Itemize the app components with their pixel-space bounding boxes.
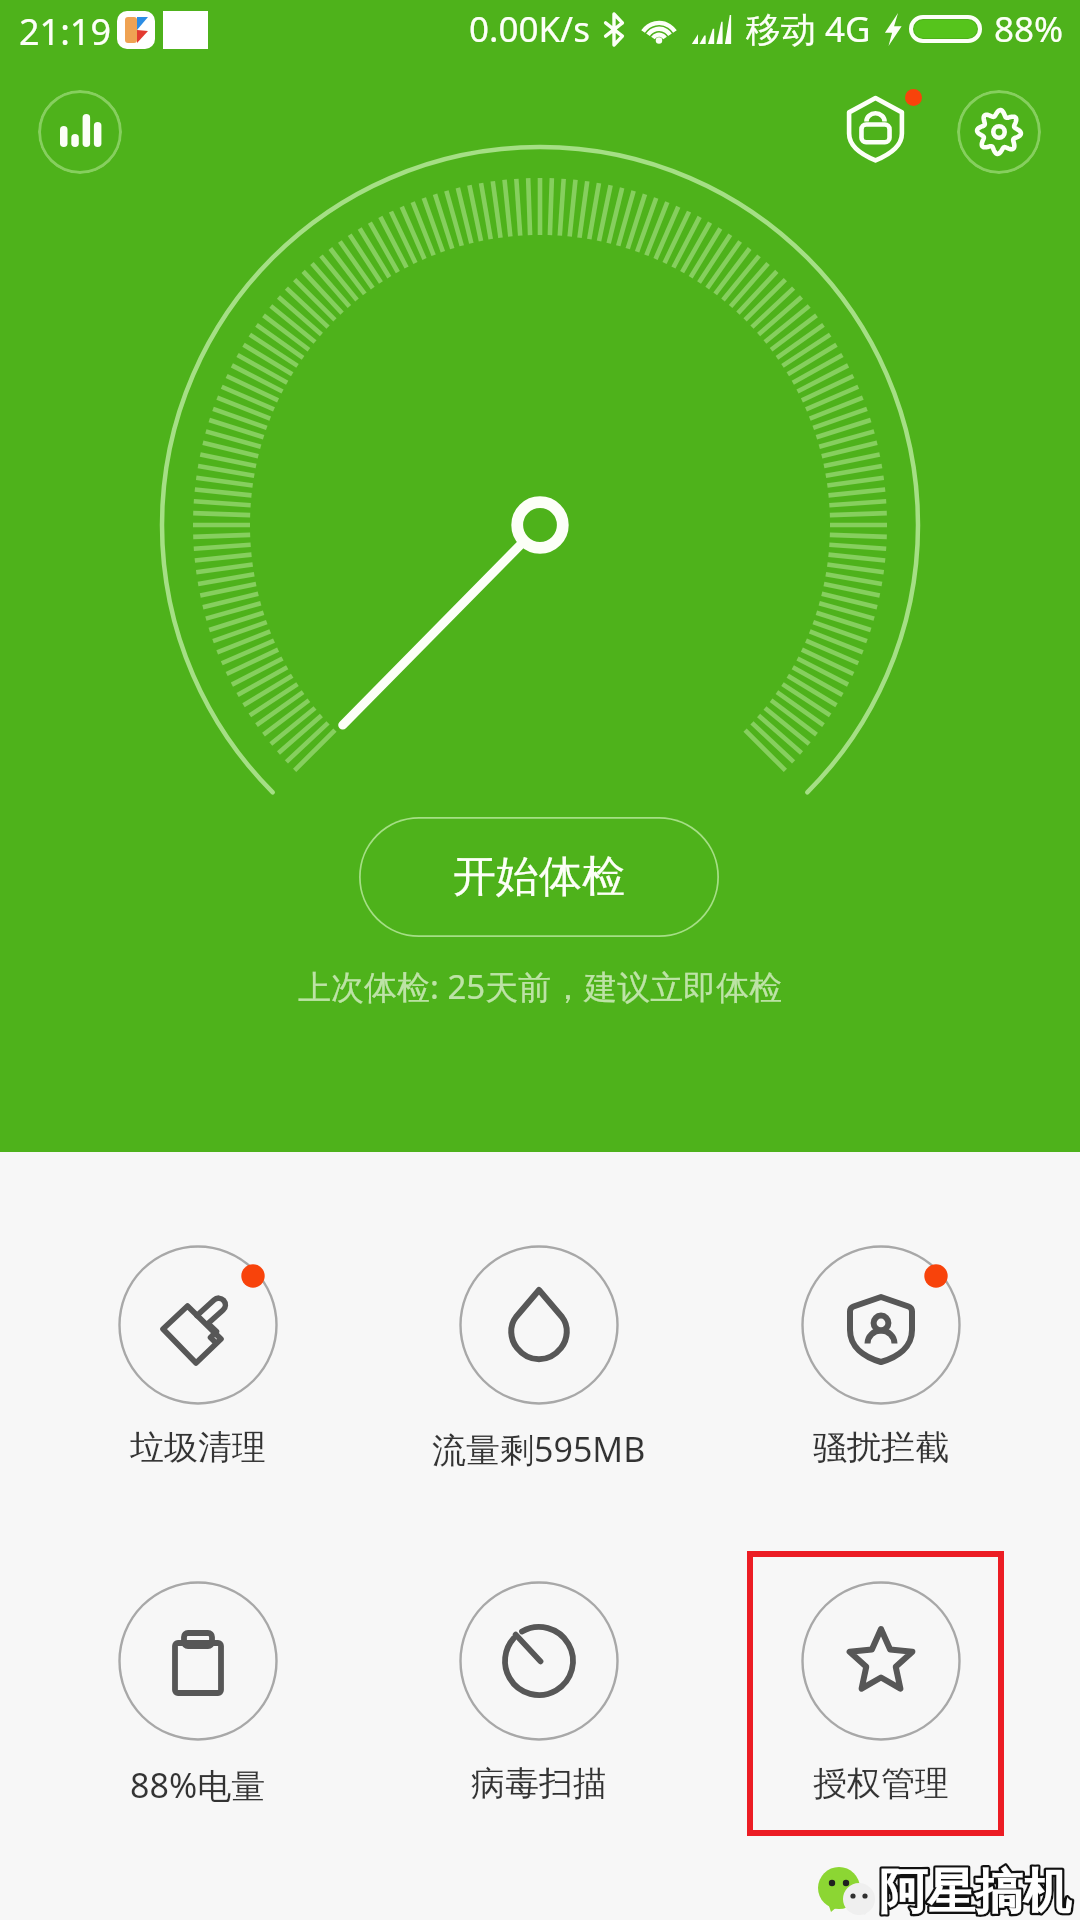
staticText: 阿星搞机 <box>879 1862 1071 1920</box>
button[interactable]: Traffic statistics <box>38 90 122 174</box>
button[interactable]: Settings <box>957 90 1041 174</box>
staticText: 开始体检 <box>453 850 625 904</box>
button[interactable]: 垃圾清理 <box>68 1246 328 1476</box>
staticText: 授权管理 <box>813 1762 949 1805</box>
staticText: 上次体检: 25天前，建议立即体检 <box>298 964 783 1009</box>
button[interactable]: 88%电量 <box>68 1582 328 1812</box>
button[interactable]: 授权管理 <box>751 1582 1011 1812</box>
staticText: 88% <box>994 5 1064 53</box>
staticText: 0.00K/s <box>469 5 590 53</box>
staticText: 垃圾清理 <box>130 1426 266 1469</box>
staticText: 阿星搞机 <box>879 1862 1071 1920</box>
button[interactable]: App lock <box>845 90 921 166</box>
button[interactable]: 病毒扫描 <box>409 1582 669 1812</box>
staticText: 88%电量 <box>130 1762 266 1808</box>
staticText: 骚扰拦截 <box>813 1426 949 1469</box>
button[interactable]: 骚扰拦截 <box>751 1246 1011 1476</box>
staticText: 流量剩595MB <box>432 1426 646 1472</box>
button[interactable]: 开始体检 <box>359 817 719 937</box>
staticText: 移动 4G <box>746 5 871 53</box>
staticText: 21:19 <box>19 7 112 56</box>
staticText: 病毒扫描 <box>471 1762 607 1805</box>
button[interactable]: 流量剩595MB <box>409 1246 669 1476</box>
